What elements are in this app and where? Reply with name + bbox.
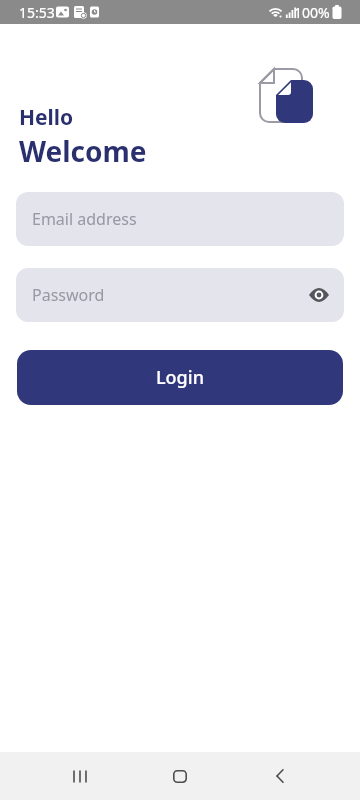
staticText: 15:53 (19, 3, 55, 22)
button[interactable]: Login (17, 350, 343, 405)
staticText: Welcome (19, 132, 147, 170)
staticText: Login (156, 365, 204, 390)
staticText: Password (32, 284, 105, 306)
button[interactable] (156, 752, 204, 800)
staticText: Hello (19, 103, 74, 132)
button[interactable]: Email address (16, 192, 344, 246)
button[interactable]: Password (16, 268, 344, 322)
button[interactable] (256, 752, 304, 800)
staticText: 100% (294, 3, 330, 22)
staticText: Email address (32, 208, 137, 230)
button[interactable] (56, 752, 104, 800)
